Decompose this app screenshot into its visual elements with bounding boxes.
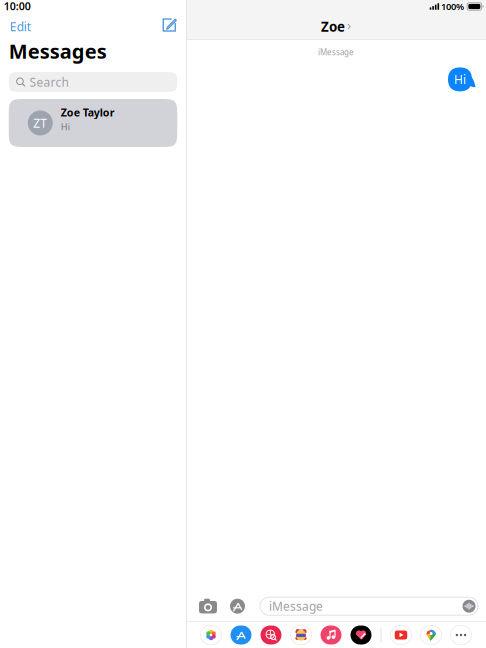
button[interactable]: App Store xyxy=(230,625,251,644)
staticText: Hi xyxy=(454,71,466,87)
button[interactable]: App Store xyxy=(228,597,247,616)
staticText: iMessage xyxy=(318,47,354,57)
button[interactable]: Record Audio xyxy=(462,600,475,613)
staticText: Search xyxy=(30,74,69,90)
staticText: 10:00 xyxy=(4,0,31,13)
staticText: iMessage xyxy=(269,598,323,614)
button[interactable]: YouTube xyxy=(390,625,411,644)
staticText: Zoe Taylor xyxy=(61,105,115,119)
button[interactable]: Memoji xyxy=(290,625,311,644)
button[interactable]: More xyxy=(450,625,471,644)
button[interactable]: Music xyxy=(320,625,341,644)
button[interactable]: Edit xyxy=(8,12,33,37)
button[interactable]: ZT xyxy=(9,99,177,147)
button[interactable]: Camera xyxy=(197,597,219,616)
button[interactable]: Photos xyxy=(200,625,221,644)
button[interactable]: New Message xyxy=(161,16,178,34)
staticText: Hi xyxy=(61,120,70,133)
staticText: Edit xyxy=(10,18,31,34)
button[interactable]: Images xyxy=(260,625,281,644)
staticText: 100% xyxy=(441,0,464,13)
button[interactable]: Maps xyxy=(420,625,441,644)
button[interactable]: Digital Touch xyxy=(350,625,371,644)
button[interactable]: Search xyxy=(9,72,177,92)
staticText: Zoe xyxy=(321,17,345,36)
staticText: Messages xyxy=(9,37,107,65)
staticText: ZT xyxy=(33,115,47,131)
